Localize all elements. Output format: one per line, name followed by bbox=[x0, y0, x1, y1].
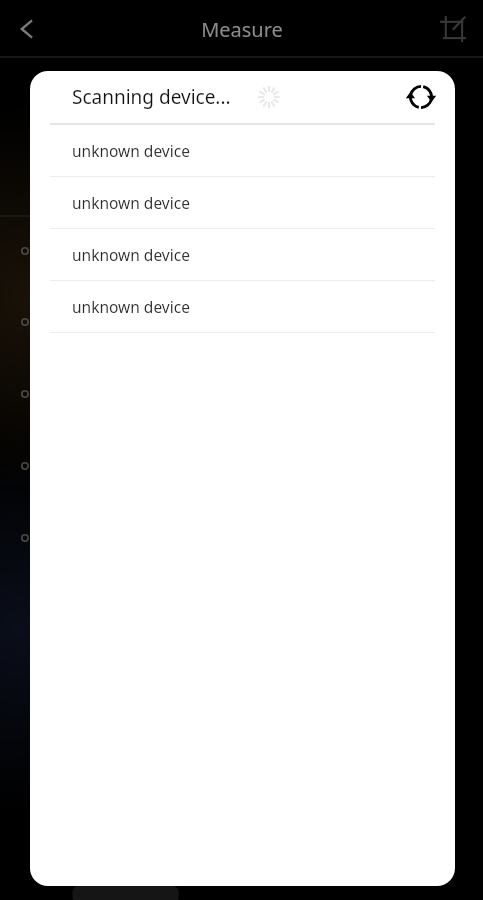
button[interactable]: unknown device bbox=[30, 177, 455, 228]
staticText: Measure bbox=[201, 16, 283, 43]
staticText: unknown device bbox=[72, 192, 190, 213]
button[interactable]: Crop bbox=[427, 3, 479, 55]
staticText: unknown device bbox=[72, 244, 190, 265]
button[interactable]: unknown device bbox=[30, 281, 455, 332]
button[interactable]: unknown device bbox=[30, 229, 455, 280]
staticText: Scanning device... bbox=[72, 84, 231, 110]
staticText: unknown device bbox=[72, 140, 190, 161]
button[interactable]: Back bbox=[2, 3, 54, 55]
button[interactable]: Refresh bbox=[397, 73, 445, 121]
staticText: unknown device bbox=[72, 296, 190, 317]
button[interactable]: unknown device bbox=[30, 125, 455, 176]
